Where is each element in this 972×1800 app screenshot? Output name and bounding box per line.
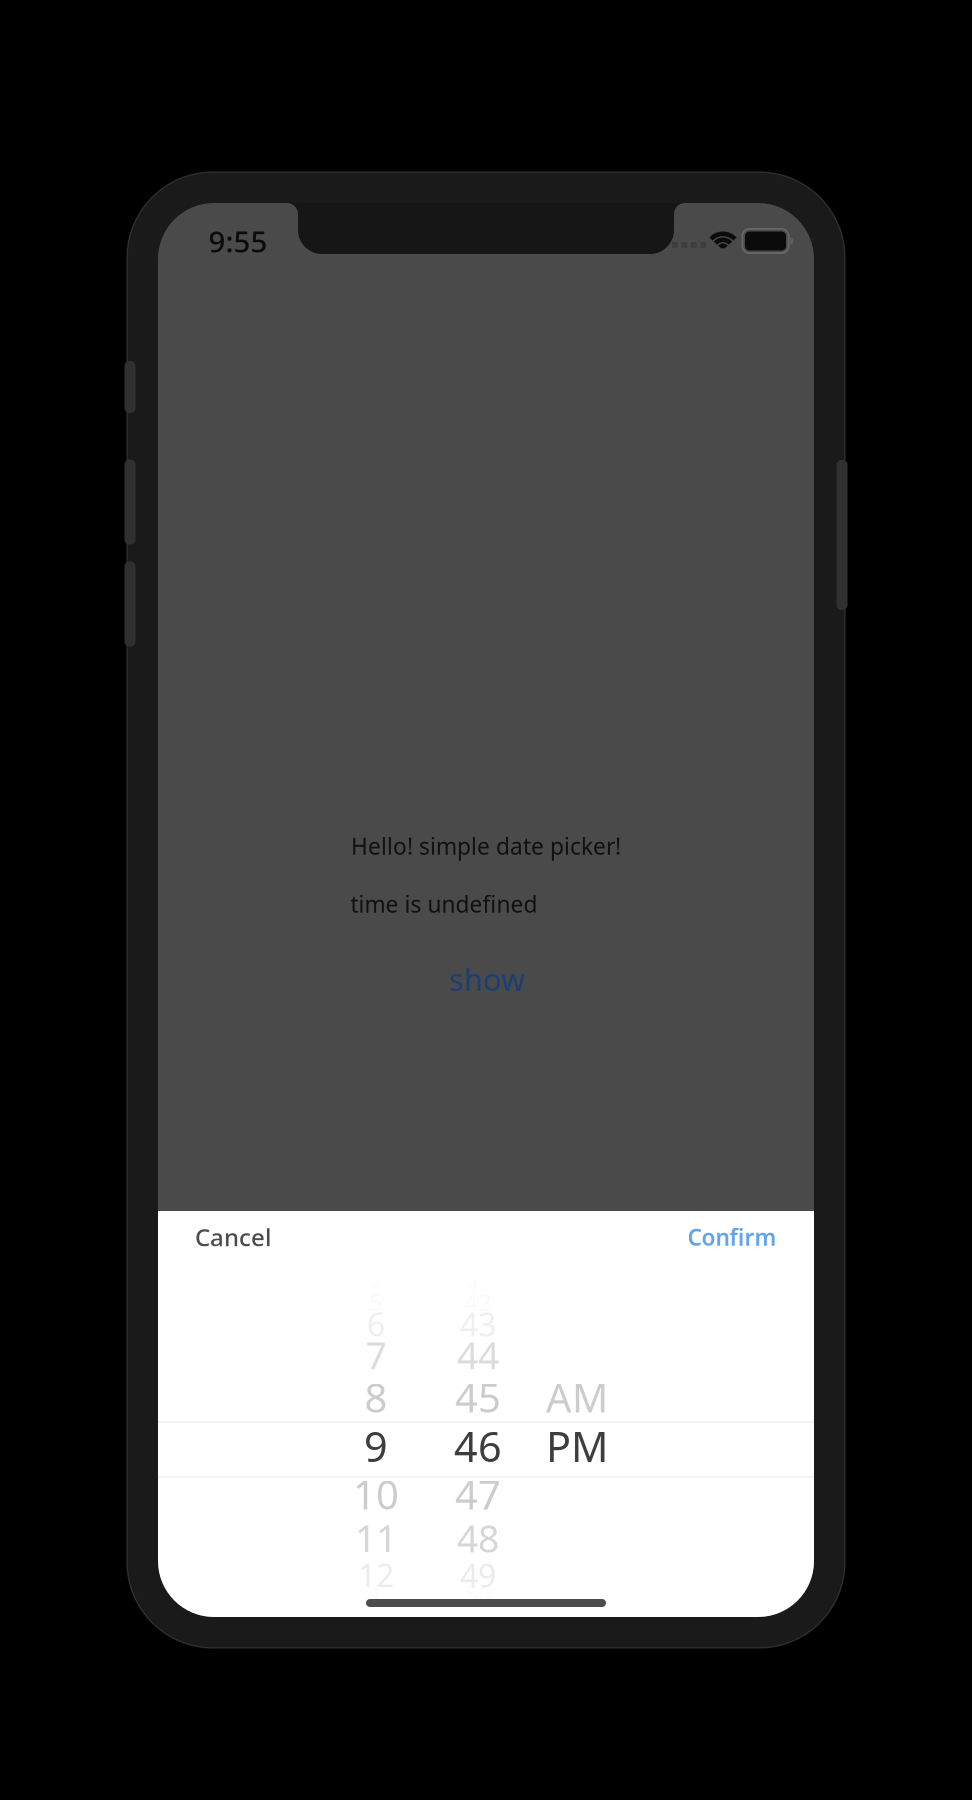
staticText: time is undefined: [350, 889, 537, 919]
staticText: Confirm: [687, 1222, 776, 1252]
staticText: 46: [454, 1419, 502, 1473]
staticText: 45: [455, 1370, 501, 1423]
staticText: 42: [464, 1286, 492, 1318]
staticText: 6: [367, 1303, 385, 1345]
staticText: 44: [457, 1330, 499, 1380]
staticText: 7: [365, 1330, 386, 1380]
staticText: 9: [364, 1419, 388, 1473]
button[interactable]: AM or PM: [158, 203, 814, 1617]
button[interactable]: Confirm: [671, 1208, 792, 1266]
staticText: 48: [457, 1513, 499, 1563]
staticText: 47: [455, 1467, 501, 1520]
staticText: 11: [355, 1513, 397, 1563]
staticText: 5: [369, 1286, 383, 1318]
staticText: PM: [546, 1419, 608, 1473]
staticText: 9:55: [208, 221, 267, 260]
staticText: AM: [546, 1370, 608, 1423]
button[interactable]: show: [431, 947, 543, 1011]
staticText: 8: [364, 1370, 387, 1423]
staticText: 43: [460, 1303, 496, 1345]
staticText: Cancel: [195, 1221, 271, 1253]
staticText: Hello! simple date picker!: [351, 831, 621, 861]
staticText: 50: [466, 1580, 490, 1608]
button[interactable]: Minute: [158, 203, 814, 1617]
staticText: show: [449, 959, 525, 999]
staticText: 12: [358, 1554, 394, 1596]
staticText: 49: [460, 1554, 496, 1596]
button[interactable]: Cancel: [179, 1207, 287, 1267]
staticText: 10: [353, 1467, 399, 1520]
staticText: 1: [370, 1580, 382, 1608]
button[interactable]: Hour: [158, 203, 814, 1617]
